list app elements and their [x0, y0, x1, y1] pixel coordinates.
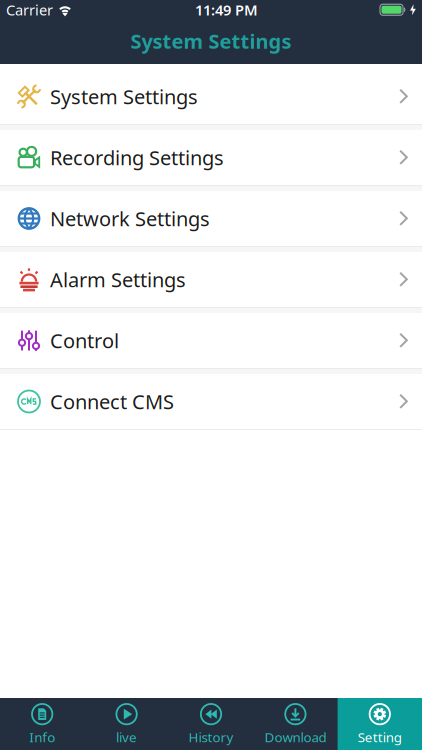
button[interactable]: Setting [338, 698, 422, 750]
staticText: Connect CMS [50, 388, 174, 415]
staticText: Carrier [6, 0, 53, 19]
button[interactable]: History [169, 698, 253, 750]
staticText: Alarm Settings [50, 266, 186, 293]
staticText: Network Settings [50, 205, 210, 232]
button[interactable]: System Settings [0, 69, 422, 124]
staticText: Setting [358, 728, 402, 746]
button[interactable]: Connect CMS [0, 374, 422, 429]
button[interactable]: Control [0, 313, 422, 368]
staticText: Download [264, 728, 326, 746]
button[interactable]: Network Settings [0, 191, 422, 246]
staticText: live [116, 728, 137, 746]
button[interactable]: Download [253, 698, 338, 750]
button[interactable]: live [84, 698, 169, 750]
staticText: 11:49 PM [195, 0, 258, 19]
staticText: System Settings [50, 83, 198, 110]
staticText: History [188, 728, 233, 746]
staticText: Recording Settings [50, 144, 224, 171]
staticText: Control [50, 327, 119, 354]
button[interactable]: Alarm Settings [0, 252, 422, 307]
staticText: Info [29, 728, 55, 746]
staticText: System Settings [130, 28, 291, 54]
button[interactable]: Info [0, 698, 84, 750]
button[interactable]: Recording Settings [0, 130, 422, 185]
